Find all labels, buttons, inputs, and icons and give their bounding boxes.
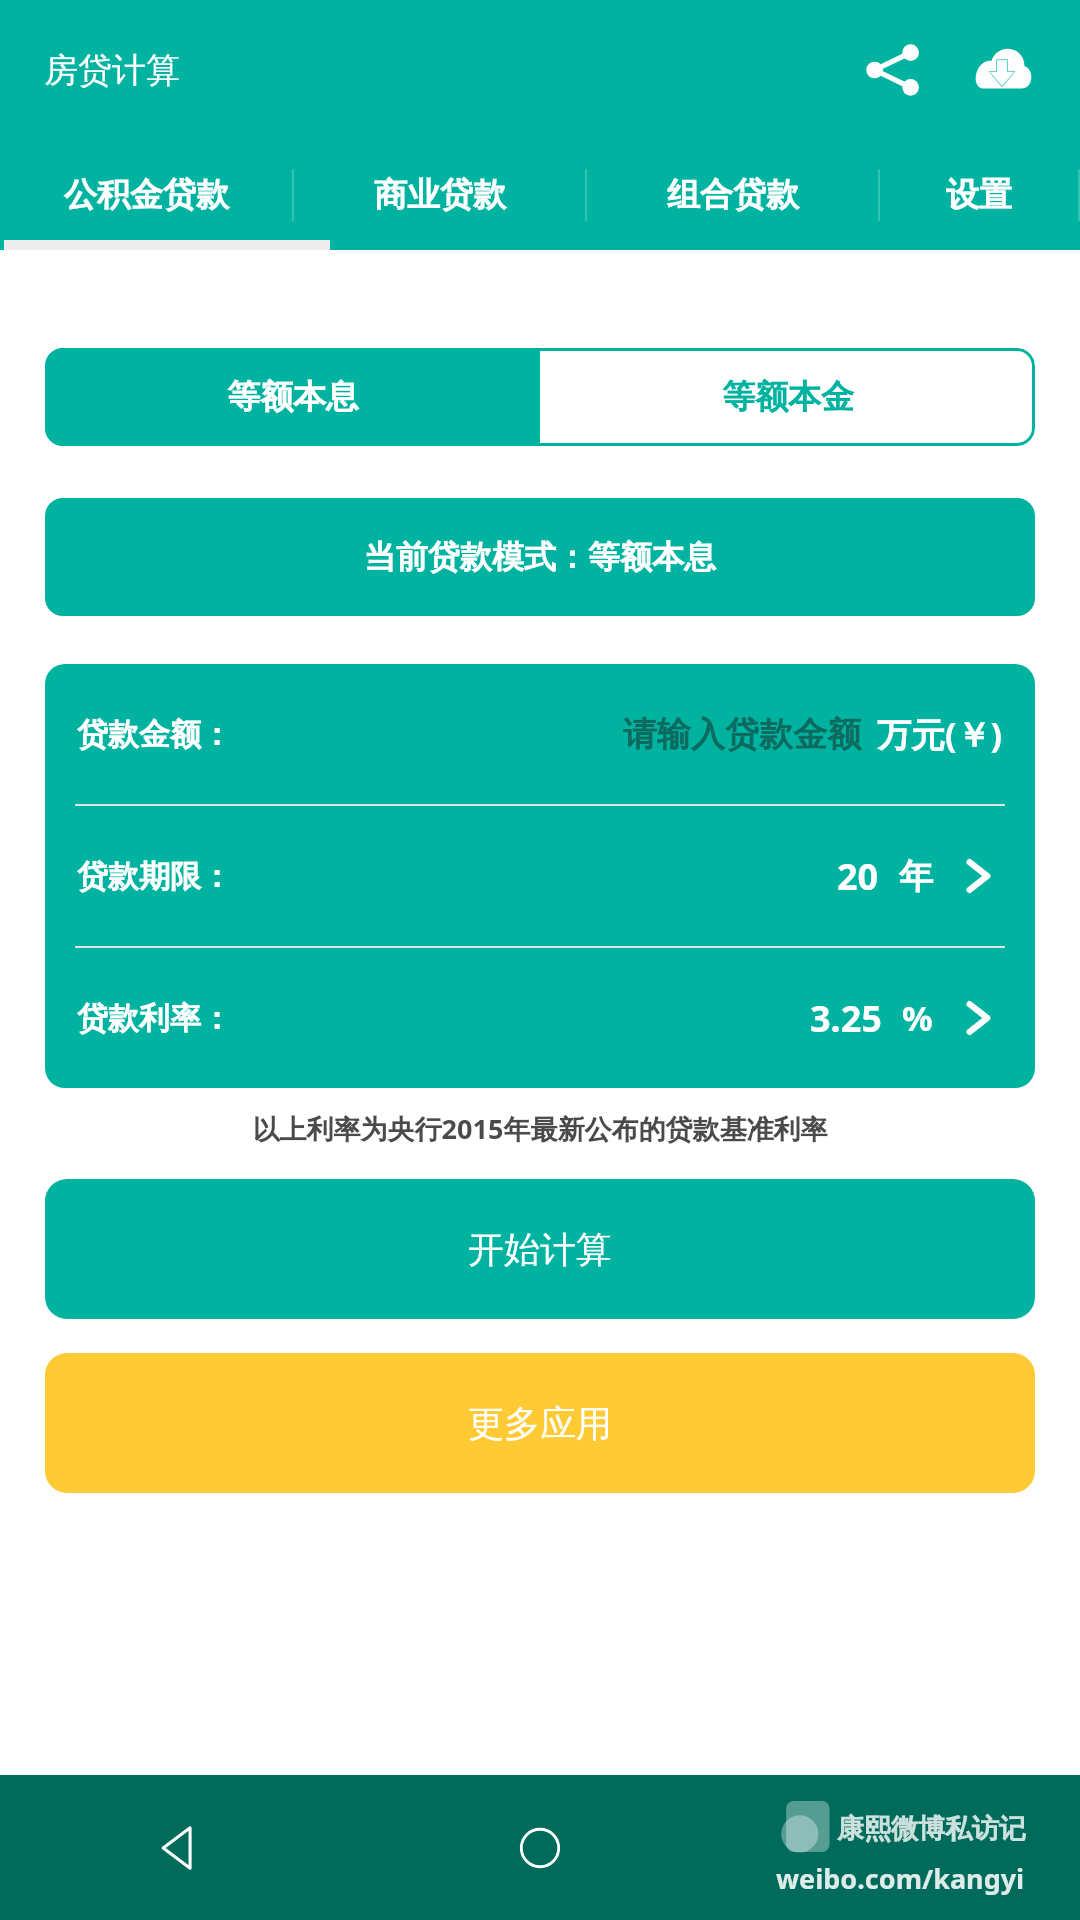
staticText: 公积金贷款: [64, 174, 229, 216]
button[interactable]: 设置: [880, 140, 1078, 250]
button[interactable]: Download: [954, 22, 1050, 118]
button[interactable]: 贷款利率：: [45, 948, 1035, 1088]
staticText: 年: [899, 855, 933, 898]
button[interactable]: 开始计算: [45, 1179, 1035, 1319]
staticText: 开始计算: [468, 1227, 612, 1272]
button[interactable]: 贷款金额：: [45, 664, 1035, 804]
staticText: 贷款利率：: [77, 999, 232, 1038]
staticText: 等额本金: [722, 376, 854, 418]
staticText: 请输入贷款金额: [623, 713, 861, 756]
staticText: 房贷计算: [44, 49, 180, 92]
button[interactable]: 等额本金: [540, 348, 1035, 446]
button[interactable]: 商业贷款: [294, 140, 585, 250]
staticText: 贷款金额：: [77, 715, 232, 754]
staticText: 贷款期限：: [77, 857, 232, 896]
staticText: weibo.com/kangyi: [776, 1860, 1025, 1897]
button[interactable]: Home: [360, 1775, 720, 1920]
button[interactable]: Back: [0, 1775, 360, 1920]
staticText: 康熙微博私访记: [837, 1812, 1026, 1846]
staticText: 20: [837, 852, 879, 901]
staticText: 3.25: [810, 994, 882, 1043]
staticText: 设置: [946, 174, 1012, 216]
button[interactable]: 更多应用: [45, 1353, 1035, 1493]
button[interactable]: 组合贷款: [587, 140, 878, 250]
button[interactable]: Share: [844, 22, 940, 118]
staticText: 以上利率为央行2015年最新公布的贷款基准利率: [0, 1110, 1080, 1147]
staticText: %: [902, 995, 933, 1041]
button[interactable]: 等额本息: [45, 348, 540, 446]
staticText: 万元(￥): [877, 711, 1003, 757]
button[interactable]: 当前贷款模式：等额本息: [45, 498, 1035, 616]
staticText: 商业贷款: [374, 174, 506, 216]
button[interactable]: 贷款期限：: [45, 806, 1035, 946]
staticText: 组合贷款: [667, 174, 799, 216]
staticText: 更多应用: [468, 1401, 612, 1446]
staticText: 等额本息: [227, 376, 359, 418]
button[interactable]: 公积金贷款: [0, 140, 292, 250]
staticText: 当前贷款模式：等额本息: [364, 537, 716, 577]
